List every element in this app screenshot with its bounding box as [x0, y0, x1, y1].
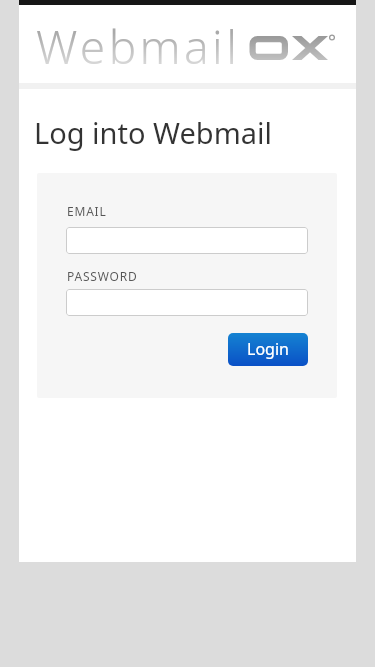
staticText: EMAIL — [67, 203, 107, 219]
staticText: PASSWORD — [67, 268, 138, 284]
button[interactable] — [66, 227, 308, 254]
staticText: Log into Webmail — [34, 113, 273, 152]
staticText: Webmail — [36, 15, 241, 78]
button[interactable] — [66, 289, 308, 316]
staticText: Login — [247, 338, 289, 360]
button[interactable]: Login — [228, 333, 308, 366]
